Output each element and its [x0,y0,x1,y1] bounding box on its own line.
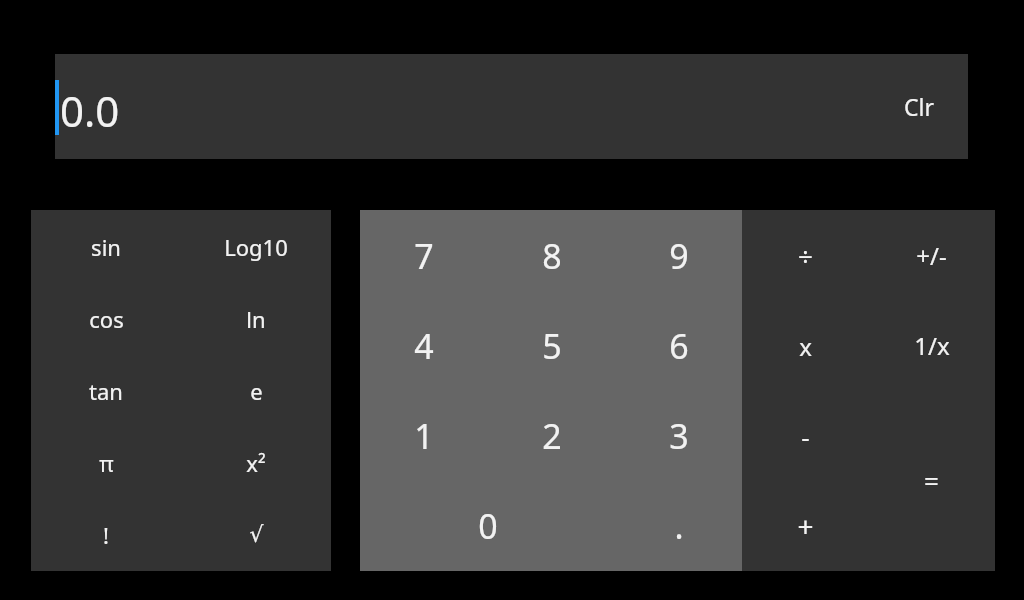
button[interactable]: 0.0 [55,54,968,159]
staticText: 3 [669,413,689,459]
staticText: 6 [669,323,689,369]
staticText: 1 [414,413,434,459]
staticText: 5 [542,323,562,369]
button[interactable]: sin [31,210,181,283]
staticText: 1/x [914,329,950,362]
button[interactable]: 0 [360,481,615,571]
button[interactable]: 9 [615,210,742,301]
staticText: ! [103,520,109,550]
staticText: 4 [414,323,434,369]
button[interactable]: 1 [360,391,488,481]
staticText: + [797,507,814,545]
staticText: - [801,419,810,454]
staticText: 0 [478,503,498,549]
button[interactable]: √ [181,499,331,571]
button[interactable]: 1/x [868,300,995,390]
button[interactable]: tan [31,355,181,427]
staticText: π [99,448,114,478]
button[interactable]: 4 [360,301,488,391]
button[interactable]: π [31,427,181,499]
staticText: 7 [414,233,434,279]
staticText: x² [246,448,266,478]
staticText: 8 [542,233,562,279]
staticText: ln [246,304,266,334]
button[interactable]: x² [181,427,331,499]
staticText: Clr [904,91,934,122]
staticText: sin [91,232,121,262]
staticText: ÷ [798,238,813,273]
button[interactable]: ÷ [742,210,868,301]
button[interactable]: Log10 [181,210,331,283]
button[interactable]: x [742,301,868,391]
button[interactable]: +/- [868,210,995,300]
staticText: e [250,376,263,406]
staticText: 0.0 [60,82,120,139]
staticText: cos [89,304,124,334]
button[interactable]: cos [31,283,181,355]
button[interactable]: = [868,390,995,571]
button[interactable]: ln [181,283,331,355]
staticText: +/- [916,239,947,272]
button[interactable]: ! [31,499,181,571]
staticText: . [674,503,684,549]
button[interactable]: Clr [904,91,934,122]
button[interactable]: e [181,355,331,427]
button[interactable]: 2 [488,391,615,481]
button[interactable]: + [742,481,868,571]
staticText: tan [89,376,123,406]
button[interactable]: 5 [488,301,615,391]
staticText: 2 [542,413,562,459]
button[interactable]: 3 [615,391,742,481]
button[interactable]: . [615,481,742,571]
staticText: 9 [669,233,689,279]
button[interactable]: 8 [488,210,615,301]
staticText: x [799,330,812,363]
button[interactable]: 7 [360,210,488,301]
staticText: √ [249,522,264,548]
staticText: Log10 [224,232,288,262]
button[interactable]: 6 [615,301,742,391]
staticText: = [924,463,939,498]
button[interactable]: - [742,391,868,481]
